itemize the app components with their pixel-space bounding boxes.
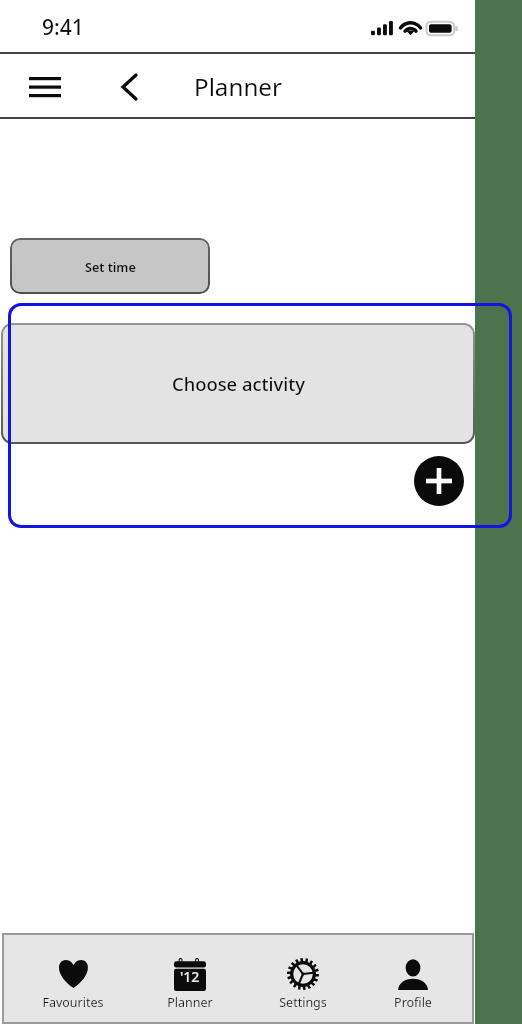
staticText: 9:41 — [42, 13, 84, 42]
staticText: Choose activity — [172, 371, 305, 396]
button[interactable]: Profile — [357, 933, 469, 1024]
staticText: Planner — [194, 70, 282, 103]
button[interactable]: Favourites — [17, 933, 129, 1024]
staticText: Set time — [85, 259, 136, 276]
button[interactable]: Choose activity — [1, 323, 475, 444]
button[interactable]: '12 — [134, 933, 246, 1024]
staticText: Planner — [167, 994, 213, 1011]
staticText: Profile — [394, 994, 432, 1011]
staticText: Settings — [279, 994, 327, 1011]
button[interactable]: Settings — [247, 933, 359, 1024]
button[interactable]: Add — [414, 456, 464, 506]
button[interactable]: Set time — [10, 238, 210, 294]
button[interactable]: Menu — [21, 63, 69, 111]
button[interactable]: Back — [105, 63, 153, 111]
staticText: '12 — [180, 967, 200, 986]
staticText: Favourites — [42, 994, 104, 1011]
